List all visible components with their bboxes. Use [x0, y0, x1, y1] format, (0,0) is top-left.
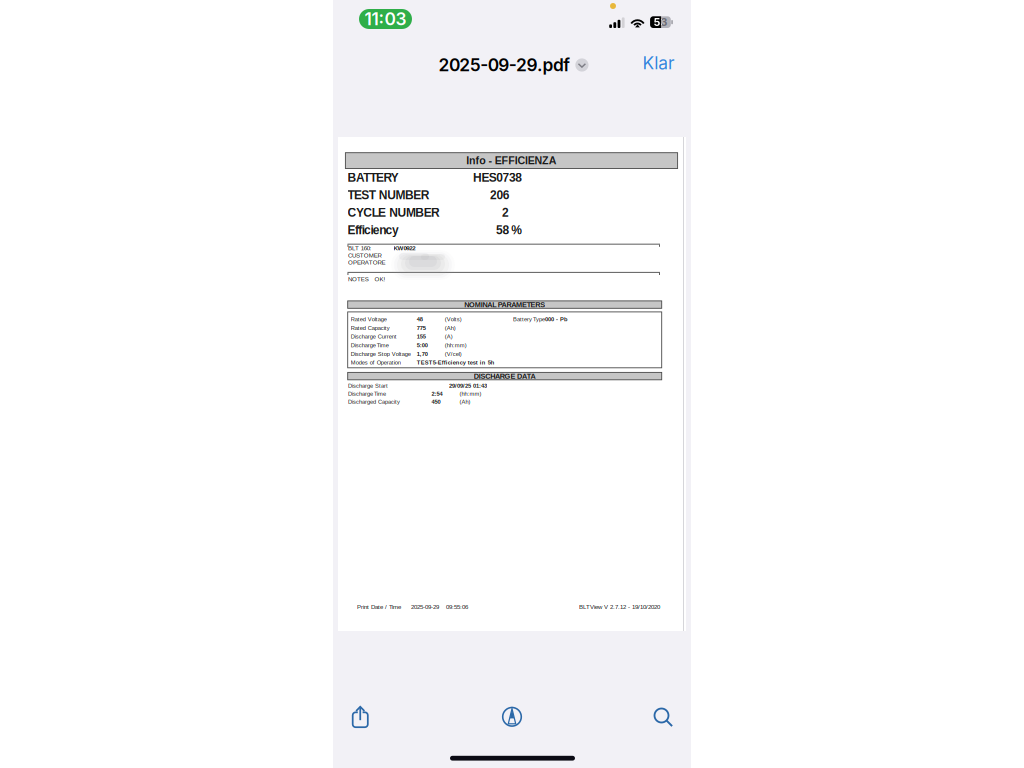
staticText: Klar — [642, 52, 675, 73]
staticText: 5:00 — [417, 342, 428, 348]
staticText: Discharge Start — [348, 382, 388, 389]
staticText: KW0922 — [393, 245, 415, 252]
staticText: 58 % — [496, 223, 522, 237]
staticText: HES0738 — [473, 171, 522, 184]
staticText: (A) — [445, 333, 453, 340]
staticText: Battery Type — [513, 316, 545, 322]
button[interactable]: Search — [644, 695, 686, 739]
staticText: DISCHARGE DATA — [474, 372, 536, 380]
staticText: (hh:mm) — [459, 390, 481, 397]
staticText: (hh:mm) — [445, 342, 467, 348]
staticText: 53 — [653, 16, 667, 29]
staticText: (Ah) — [445, 325, 456, 331]
staticText: Rated Capacity — [351, 325, 390, 331]
staticText: Rated Voltage — [351, 316, 387, 322]
staticText: 53 — [653, 16, 667, 29]
staticText: (Ah) — [459, 398, 470, 405]
staticText: CUSTOMER — [348, 252, 382, 259]
staticText: TEST5-Efficiency test in 5h — [417, 359, 495, 366]
button[interactable]: Markup — [481, 695, 523, 739]
staticText: 450 — [431, 398, 440, 405]
staticText: NOMINAL PARAMETERS — [464, 300, 545, 309]
staticText: OPERATORE — [348, 259, 385, 266]
staticText: 2025-09-29.pdf — [438, 54, 570, 75]
staticText: BATTERY — [347, 171, 399, 184]
staticText: 206 — [490, 188, 510, 202]
staticText: 2025-09-29 — [411, 603, 439, 610]
staticText: 775 — [417, 325, 426, 331]
staticText: BLTView V 2.7.12 - 19/10/2020 — [579, 603, 660, 610]
staticText: 11:03 — [364, 8, 406, 29]
staticText: CYCLE NUMBER — [347, 206, 440, 219]
staticText: Modes of Operation — [351, 359, 401, 366]
staticText: Info - EFFICIENZA — [466, 155, 557, 166]
staticText: 2:54 — [431, 390, 442, 397]
staticText: (Volts) — [445, 316, 462, 322]
staticText: BLT 160: — [348, 245, 372, 252]
staticText: 2 — [502, 206, 509, 219]
staticText: Discharge Time — [348, 390, 386, 397]
staticText: 000 - Pb — [545, 316, 568, 322]
staticText: Discharged Capacity — [348, 398, 400, 405]
staticText: 1,70 — [417, 351, 428, 357]
staticText: Discharge Time — [351, 342, 389, 348]
staticText: 09:55:06 — [446, 603, 468, 610]
staticText: Discharge Current — [351, 333, 397, 340]
staticText: 48 — [417, 316, 423, 322]
button[interactable]: Share — [337, 695, 379, 739]
staticText: 29/09/25 01:43 — [449, 382, 487, 389]
staticText: (V/cel) — [445, 351, 462, 357]
staticText: Discharge Stop Voltage — [351, 351, 411, 357]
staticText: Print Date / Time — [357, 603, 401, 610]
staticText: 155 — [417, 333, 426, 340]
staticText: NOTES OK! — [348, 276, 385, 282]
button[interactable]: Klar — [621, 43, 675, 83]
staticText: TEST NUMBER — [347, 188, 430, 202]
staticText: Efficiency — [347, 223, 399, 237]
